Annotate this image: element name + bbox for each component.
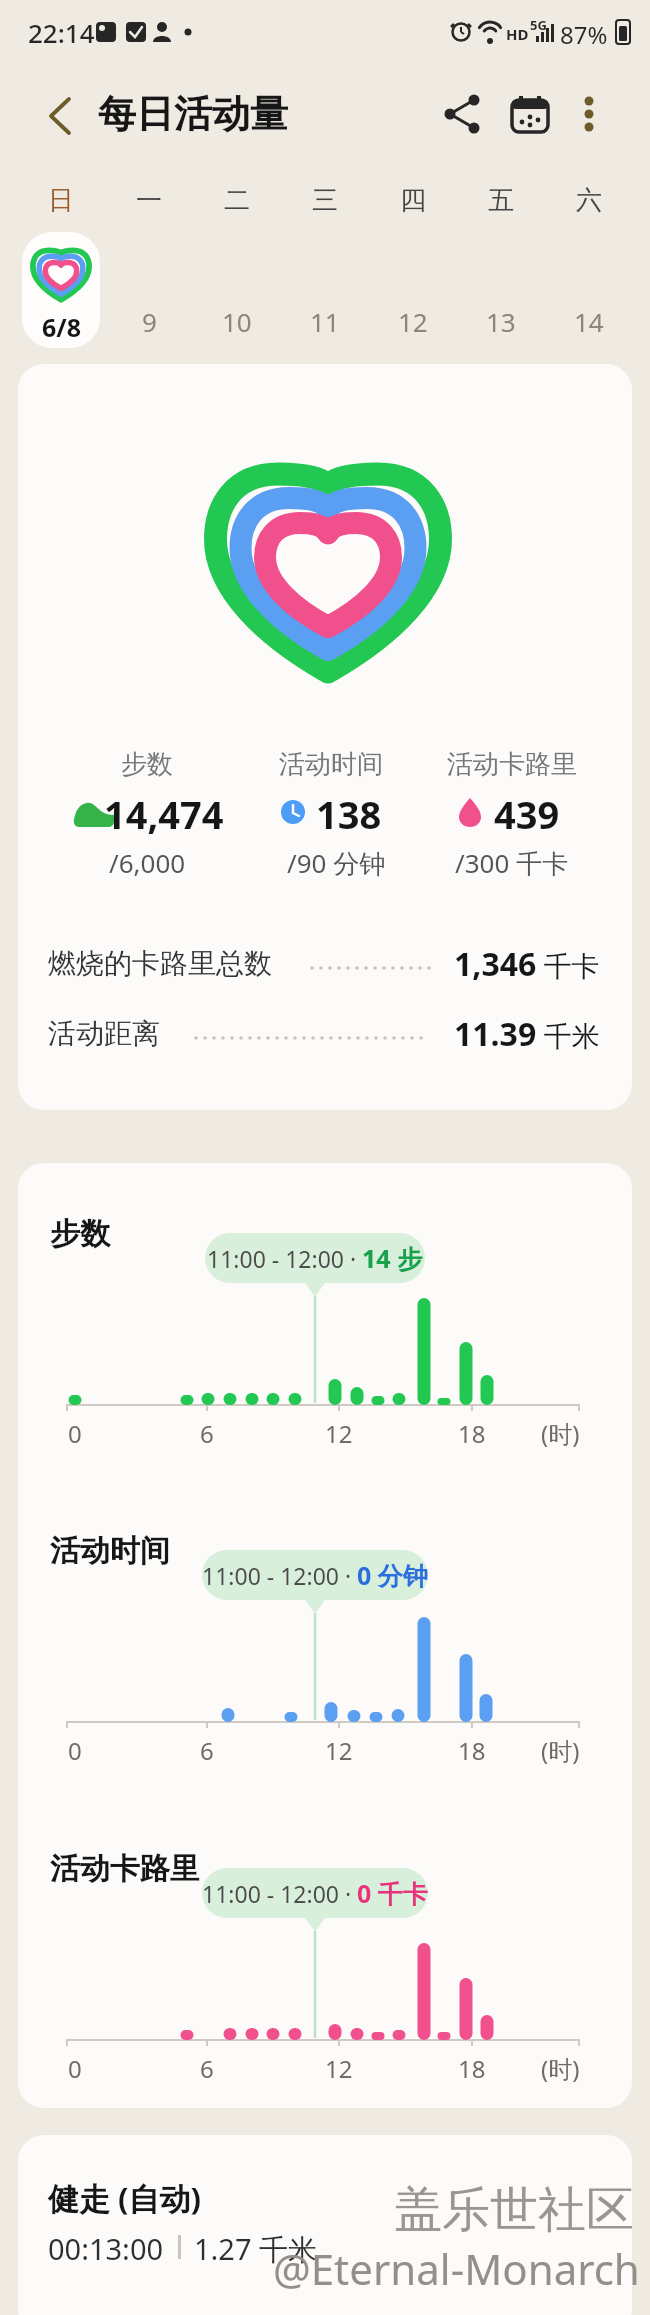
staticText: 12 [398, 304, 428, 339]
staticText: 12 [325, 1734, 353, 1767]
staticText: 13 [486, 304, 516, 339]
button[interactable]: 步数 [18, 364, 632, 1110]
staticText: 燃烧的卡路里总数 [48, 946, 272, 981]
staticText: 439 [494, 788, 560, 840]
button[interactable]: 9 [109, 304, 189, 364]
button[interactable]: 12 [373, 304, 453, 364]
staticText: 0 [68, 1417, 82, 1450]
staticText: 9 [142, 304, 157, 339]
button[interactable]: 14 [549, 304, 629, 364]
staticText: 00:13:00 [48, 2229, 164, 2268]
button[interactable] [570, 92, 610, 132]
staticText: /300 千卡 [455, 845, 569, 881]
staticText: 活动时间 [50, 1532, 170, 1570]
staticText: 11:00 - 12:00 · 14 步 [207, 1241, 423, 1275]
staticText: 活动卡路里 [50, 1850, 200, 1888]
staticText: 6/8 [42, 310, 81, 344]
button[interactable] [508, 92, 552, 136]
staticText: 活动卡路里 [447, 748, 577, 781]
button[interactable]: 步数 [18, 1163, 632, 2108]
staticText: 6 [200, 1734, 214, 1767]
staticText: 87% [560, 18, 608, 51]
staticText: 138 [316, 788, 382, 840]
button[interactable]: 13 [461, 304, 541, 364]
staticText: 11.39 千米 [454, 1012, 600, 1056]
staticText: 1.27 千米 [194, 2229, 318, 2269]
staticText: 1,346 千卡 [454, 942, 600, 986]
staticText: 0 [68, 2052, 82, 2085]
staticText: 18 [458, 1417, 486, 1450]
staticText: 6 [200, 2052, 214, 2085]
staticText: 11:00 - 12:00 · 0 千卡 [202, 1876, 428, 1910]
staticText: 12 [325, 1417, 353, 1450]
staticText: 14 [574, 304, 604, 339]
staticText: 11:00 - 12:00 · 0 分钟 [202, 1558, 428, 1592]
staticText: 18 [458, 2052, 486, 2085]
button[interactable]: 11 [285, 304, 365, 364]
staticText: 日 [48, 184, 74, 217]
staticText: 三 [312, 184, 338, 217]
staticText: 活动时间 [279, 748, 383, 781]
staticText: (时) [541, 1734, 580, 1767]
staticText: 健走 (自动) [48, 2177, 202, 2219]
staticText: @Eternal-Monarch [273, 2240, 640, 2297]
staticText: 步数 [121, 748, 173, 781]
staticText: 五 [488, 184, 514, 217]
staticText: 二 [224, 184, 250, 217]
staticText: 六 [576, 184, 602, 217]
staticText: 10 [222, 304, 252, 339]
staticText: HD [506, 24, 529, 44]
staticText: 11 [310, 304, 340, 339]
staticText: 一 [136, 184, 162, 217]
staticText: /6,000 [109, 845, 186, 880]
staticText: 盖乐世社区 [394, 2180, 634, 2240]
staticText: 18 [458, 1734, 486, 1767]
staticText: 0 [68, 1734, 82, 1767]
staticText: (时) [541, 1417, 580, 1450]
button[interactable]: 健走 (自动) [18, 2135, 632, 2315]
button[interactable]: 6/8 [22, 232, 100, 348]
button[interactable] [440, 92, 484, 136]
staticText: 14,474 [104, 788, 224, 840]
staticText: (时) [541, 2052, 580, 2085]
staticText: 22:14 [28, 15, 95, 50]
button[interactable] [38, 94, 82, 138]
staticText: 12 [325, 2052, 353, 2085]
staticText: 四 [400, 184, 426, 217]
staticText: 5G [530, 16, 547, 34]
staticText: 每日活动量 [98, 90, 288, 138]
button[interactable]: 10 [197, 304, 277, 364]
staticText: 6 [200, 1417, 214, 1450]
staticText: /90 分钟 [287, 845, 386, 881]
staticText: 步数 [50, 1215, 110, 1253]
staticText: 活动距离 [48, 1016, 160, 1051]
